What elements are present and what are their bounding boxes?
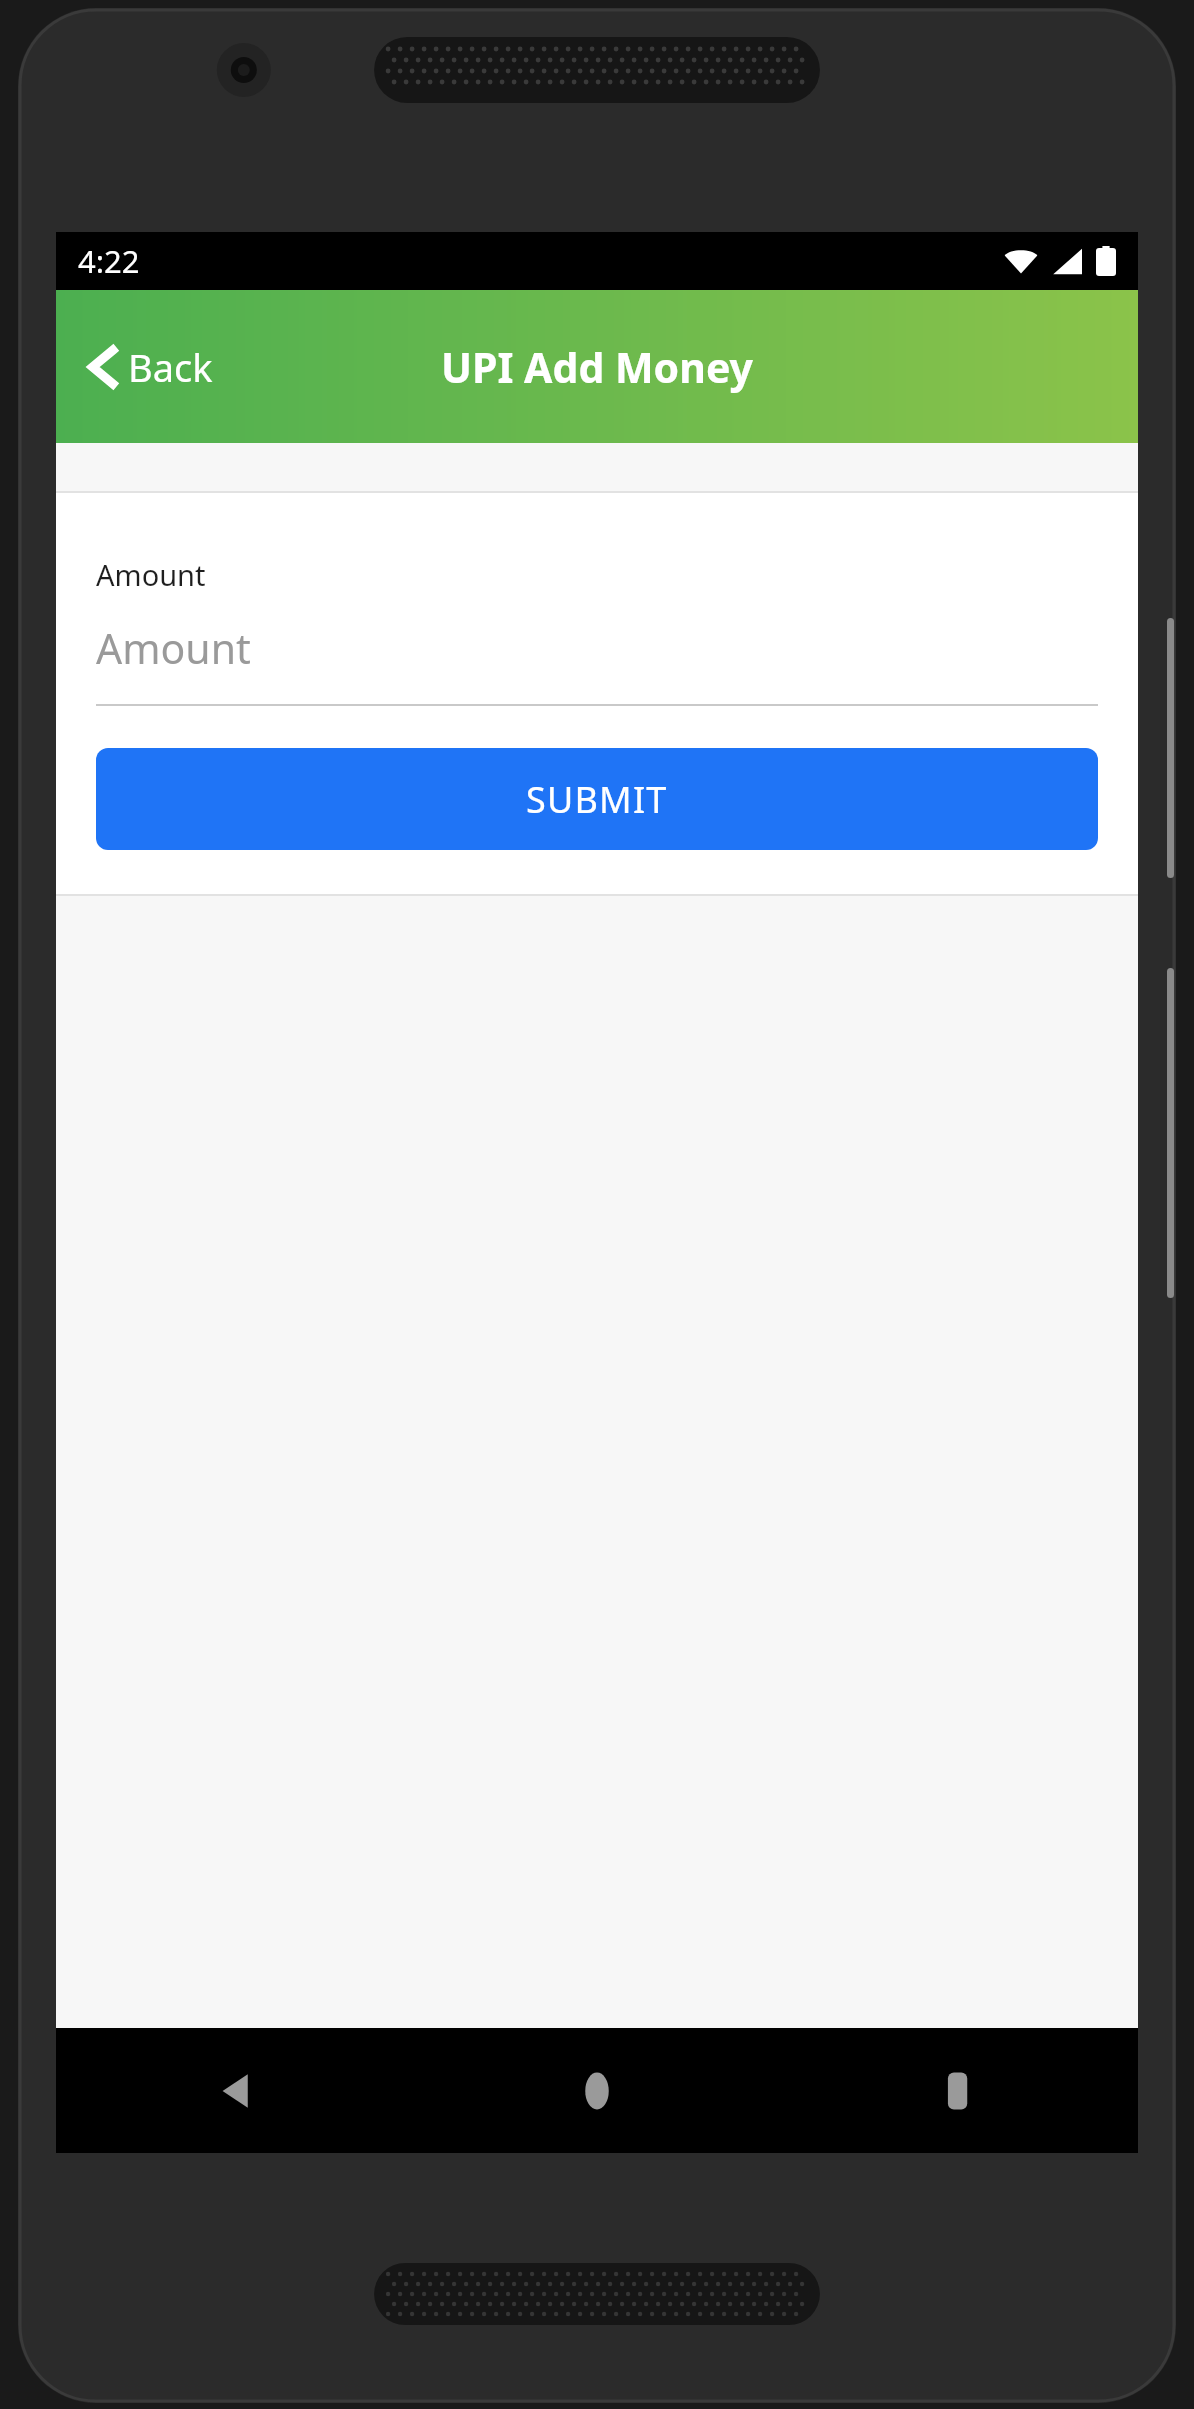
button[interactable]: SUBMIT xyxy=(96,748,1098,850)
staticText: SUBMIT xyxy=(526,775,668,824)
button[interactable]: Home xyxy=(416,2028,777,2153)
button[interactable]: Amount xyxy=(96,620,1098,706)
staticText: 4:22 xyxy=(78,240,140,282)
staticText: UPI Add Money xyxy=(441,339,753,395)
button[interactable]: Recent apps xyxy=(777,2028,1138,2153)
staticText: Amount xyxy=(96,620,251,676)
staticText: Amount xyxy=(96,555,206,594)
staticText: Back xyxy=(128,341,213,393)
button[interactable]: Back xyxy=(72,327,235,407)
button[interactable]: Back xyxy=(56,2028,416,2153)
